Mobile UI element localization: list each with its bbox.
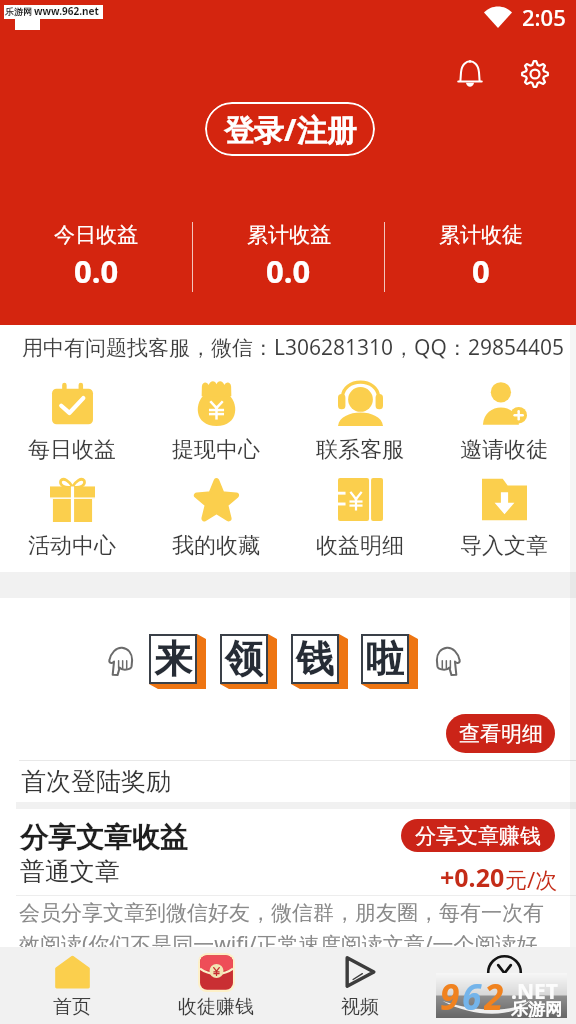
staticText: 啦	[366, 635, 404, 683]
staticText: 元/次	[505, 864, 558, 894]
staticText: 累计收益	[247, 222, 331, 248]
staticText: 分享文章赚钱	[415, 823, 541, 849]
staticText: .NET	[511, 977, 558, 1006]
button[interactable]: 累计收益	[193, 222, 384, 292]
staticText: 9	[440, 973, 460, 1018]
staticText: 领	[225, 635, 263, 683]
staticText: 我的收藏	[172, 532, 260, 560]
staticText: 导入文章	[460, 532, 548, 560]
button[interactable]: 首页	[0, 947, 144, 1019]
button[interactable]: 登录/注册	[205, 102, 375, 156]
staticText: 首页	[53, 995, 91, 1019]
staticText: 2	[484, 973, 504, 1018]
staticText: 今日收益	[54, 222, 138, 248]
staticText: 乐游网	[5, 6, 32, 17]
staticText: 普通文章	[20, 856, 120, 887]
staticText: 来	[154, 635, 192, 683]
button[interactable]: 分享文章赚钱	[401, 819, 555, 852]
button[interactable]: 收徒赚钱	[144, 947, 288, 1019]
staticText: 登录/注册	[224, 109, 357, 150]
staticText: 会员分享文章到微信好友，微信群，朋友圈，每有一次有效阅读(你们不是同一wifi/…	[19, 900, 550, 959]
button[interactable]: 我的收藏	[144, 474, 288, 560]
staticText: 分享文章收益	[20, 820, 188, 855]
staticText: 邀请收徒	[460, 436, 548, 464]
staticText: 用中有问题找客服，微信：L306281310，QQ：29854405	[22, 333, 565, 362]
staticText: 活动中心	[28, 532, 116, 560]
button[interactable]: 我的	[432, 947, 576, 1019]
button[interactable]: 查看明细	[446, 714, 555, 753]
staticText: 查看明细	[459, 721, 543, 747]
staticText: 2:05	[522, 2, 566, 32]
staticText: 乐游网	[511, 999, 562, 1020]
staticText: www.962.net	[34, 4, 99, 18]
button[interactable]: 视频	[288, 947, 432, 1019]
button[interactable]: 提现中心	[144, 378, 288, 464]
button[interactable]: 每日收益	[0, 378, 144, 464]
button[interactable]: Settings	[512, 51, 557, 96]
button[interactable]: 邀请收徒	[432, 378, 576, 464]
button[interactable]: 累计收徒	[385, 222, 576, 292]
staticText: 首次登陆奖励	[21, 766, 171, 797]
staticText: 0.0	[266, 250, 311, 292]
button[interactable]: 今日收益	[0, 222, 192, 292]
button[interactable]: 联系客服	[288, 378, 432, 464]
staticText: 0.0	[74, 250, 119, 292]
staticText: 0	[472, 250, 490, 292]
staticText: 6	[462, 973, 482, 1018]
staticText: 收益明细	[316, 532, 404, 560]
staticText: 提现中心	[172, 436, 260, 464]
staticText: +0.20	[440, 860, 505, 894]
staticText: 收徒赚钱	[178, 995, 254, 1019]
staticText: 我的	[485, 995, 523, 1019]
button[interactable]: 导入文章	[432, 474, 576, 560]
button[interactable]: 收益明细	[288, 474, 432, 560]
staticText: 每日收益	[28, 436, 116, 464]
button[interactable]: 活动中心	[0, 474, 144, 560]
staticText: 视频	[341, 995, 379, 1019]
button[interactable]: Notifications	[448, 51, 492, 95]
staticText: 钱	[296, 635, 334, 683]
staticText: 累计收徒	[439, 222, 523, 248]
staticText: 联系客服	[316, 436, 404, 464]
